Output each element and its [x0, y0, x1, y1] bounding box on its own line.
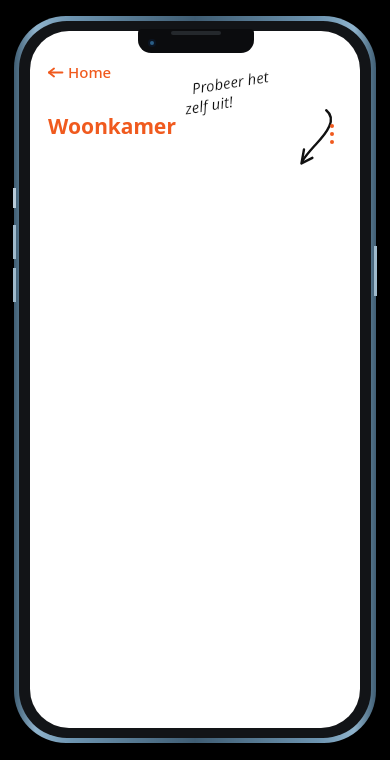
- staticText: zelf uit!: [183, 91, 235, 118]
- button[interactable]: Home: [42, 58, 118, 86]
- staticText: Probeer het: [190, 66, 271, 98]
- staticText: Woonkamer: [48, 112, 176, 141]
- button[interactable]: Meer opties: [323, 119, 341, 149]
- staticText: Home: [68, 62, 112, 82]
